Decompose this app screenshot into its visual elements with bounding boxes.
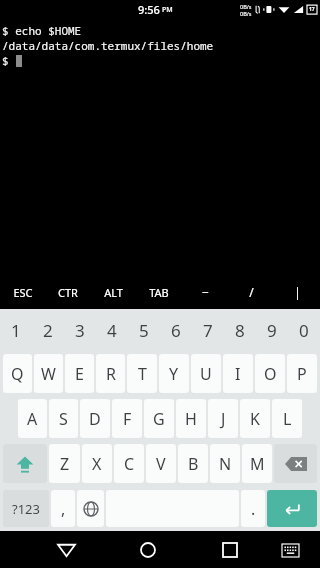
staticText: G <box>153 408 165 430</box>
button[interactable]: P <box>287 354 317 393</box>
button[interactable]: Q <box>3 354 32 393</box>
staticText: I <box>235 363 241 385</box>
staticText: X <box>92 453 102 475</box>
staticText: $ <box>2 53 16 68</box>
button[interactable]: Y <box>159 354 189 393</box>
button[interactable]: M <box>242 444 272 483</box>
button[interactable]: 3 <box>64 309 96 351</box>
button[interactable]: Switch keyboard <box>273 533 307 567</box>
button[interactable]: 5 <box>128 309 160 351</box>
button[interactable]: N <box>210 444 240 483</box>
button[interactable]: I <box>223 354 253 393</box>
staticText: V <box>156 453 166 475</box>
button[interactable]: Shift <box>3 444 47 483</box>
staticText: , <box>61 498 66 520</box>
staticText: M <box>250 453 265 475</box>
staticText: PM <box>162 5 173 15</box>
button[interactable]: 2 <box>32 309 64 351</box>
staticText: ESC <box>13 285 33 300</box>
button[interactable]: F <box>112 399 142 438</box>
button[interactable]: 7 <box>192 309 224 351</box>
button[interactable]: L <box>272 399 302 438</box>
staticText: ?123 <box>12 500 40 518</box>
staticText: 1 <box>11 319 21 342</box>
button[interactable]: TAB <box>136 275 182 309</box>
staticText: R <box>106 363 116 385</box>
staticText: O <box>264 363 277 385</box>
button[interactable]: Z <box>49 444 80 483</box>
button[interactable]: X <box>82 444 112 483</box>
staticText: 0 <box>299 319 309 342</box>
button[interactable]: O <box>255 354 285 393</box>
button[interactable]: Change language <box>77 490 104 527</box>
button[interactable]: | <box>274 275 320 309</box>
button[interactable]: 4 <box>96 309 128 351</box>
button[interactable]: B <box>178 444 208 483</box>
staticText: 0B/s <box>240 3 252 10</box>
staticText: N <box>219 453 232 475</box>
button[interactable]: . <box>241 490 265 527</box>
button[interactable]: Backspace <box>274 444 317 483</box>
staticText: C <box>124 453 135 475</box>
staticText: . <box>251 498 256 520</box>
button[interactable]: ALT <box>90 275 136 309</box>
button[interactable]: Home <box>128 531 168 568</box>
staticText: B <box>188 453 199 475</box>
staticText: Q <box>11 363 24 385</box>
button[interactable]: / <box>228 275 274 309</box>
button[interactable]: U <box>191 354 221 393</box>
staticText: 7 <box>203 319 213 342</box>
staticText: 9:56 <box>138 2 160 17</box>
staticText: 17 <box>309 6 315 13</box>
button[interactable]: E <box>65 354 94 393</box>
staticText: / <box>249 284 254 300</box>
button[interactable]: , <box>51 490 75 527</box>
button[interactable]: ?123 <box>3 490 49 527</box>
staticText: U <box>200 363 212 385</box>
button[interactable]: − <box>182 275 228 309</box>
button[interactable]: V <box>146 444 176 483</box>
staticText: J <box>221 408 226 430</box>
staticText: 6 <box>171 319 181 342</box>
button[interactable]: Enter <box>267 490 317 527</box>
button[interactable]: D <box>80 399 110 438</box>
staticText: 2 <box>43 319 53 342</box>
staticText: F <box>123 408 132 430</box>
staticText: W <box>41 363 56 385</box>
button[interactable]: H <box>176 399 206 438</box>
button[interactable]: 6 <box>160 309 192 351</box>
button[interactable]: CTR <box>45 275 90 309</box>
button[interactable]: ESC <box>0 275 45 309</box>
staticText: CTR <box>58 285 78 300</box>
button[interactable]: 1 <box>0 309 32 351</box>
staticText: 3 <box>75 319 85 342</box>
staticText: ALT <box>104 285 123 300</box>
staticText: TAB <box>149 285 169 300</box>
staticText: 9 <box>267 319 277 342</box>
staticText: H <box>185 408 197 430</box>
staticText: 8 <box>235 319 245 342</box>
button[interactable]: W <box>34 354 63 393</box>
button[interactable]: 8 <box>224 309 256 351</box>
button[interactable]: 0 <box>288 309 320 351</box>
button[interactable]: C <box>114 444 144 483</box>
staticText: E <box>75 363 84 385</box>
button[interactable]: J <box>208 399 238 438</box>
button[interactable]: K <box>240 399 270 438</box>
staticText: 0B/s <box>240 10 252 17</box>
staticText: Y <box>169 363 179 385</box>
button[interactable]: A <box>18 399 47 438</box>
button[interactable]: Recent apps <box>210 531 250 568</box>
button[interactable]: T <box>127 354 157 393</box>
button[interactable]: G <box>144 399 174 438</box>
staticText: T <box>138 363 147 385</box>
staticText: D <box>89 408 101 430</box>
button[interactable]: S <box>49 399 78 438</box>
button[interactable]: Back <box>46 531 86 568</box>
staticText: | <box>294 284 301 300</box>
staticText: Z <box>60 453 70 475</box>
button[interactable]: 9 <box>256 309 288 351</box>
staticText: 4 <box>107 319 117 342</box>
button[interactable]: R <box>96 354 125 393</box>
